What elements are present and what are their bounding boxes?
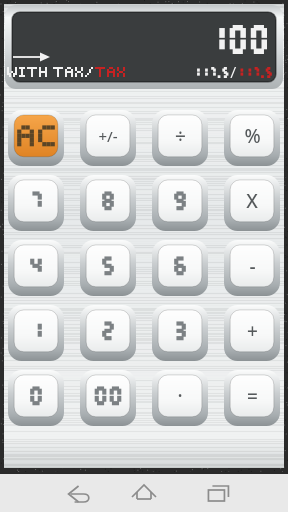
staticText: % (244, 123, 261, 149)
button[interactable]: 3 (152, 305, 208, 361)
staticText: - (249, 253, 256, 279)
button[interactable]: Plus (224, 305, 280, 361)
staticText: +/- (98, 126, 118, 146)
button[interactable]: 1 (8, 305, 64, 361)
button[interactable]: 00 (80, 370, 136, 426)
button[interactable]: 7 (8, 175, 64, 231)
button[interactable]: Divide (152, 110, 208, 166)
button[interactable]: 2 (80, 305, 136, 361)
staticText: X (246, 188, 258, 214)
button[interactable]: 6 (152, 240, 208, 296)
staticText: · (177, 383, 183, 409)
button[interactable]: 5 (80, 240, 136, 296)
button[interactable]: 0 (8, 370, 64, 426)
button[interactable]: Decimal point (152, 370, 208, 426)
button[interactable]: All clear (8, 110, 64, 166)
button[interactable]: Multiply (224, 175, 280, 231)
button[interactable]: 9 (152, 175, 208, 231)
button[interactable]: 8 (80, 175, 136, 231)
staticText: ÷ (175, 123, 186, 149)
staticText: = (247, 383, 258, 409)
button[interactable]: Minus (224, 240, 280, 296)
button[interactable]: Percent (224, 110, 280, 166)
button[interactable]: 4 (8, 240, 64, 296)
button[interactable]: Equals (224, 370, 280, 426)
staticText: + (247, 318, 258, 344)
button[interactable]: Toggle sign (80, 110, 136, 166)
